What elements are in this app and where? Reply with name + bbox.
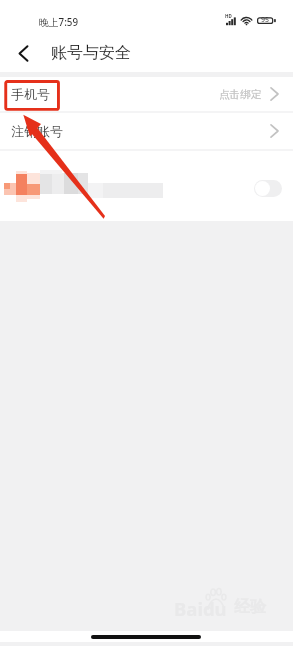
staticText: 账号与安全 xyxy=(51,43,131,63)
button[interactable]: 注销账号 xyxy=(0,113,293,149)
staticText: 注销账号 xyxy=(11,123,63,139)
button[interactable]: 手机号 xyxy=(0,77,293,111)
staticText: 手机号 xyxy=(11,86,50,102)
staticText: 点击绑定 xyxy=(219,88,262,101)
staticText: HD xyxy=(225,13,232,19)
staticText: 晚上7:59 xyxy=(39,16,79,29)
button[interactable]: 开关 xyxy=(254,180,282,197)
staticText: 95 xyxy=(261,15,270,25)
staticText: 经验 xyxy=(234,597,266,617)
button[interactable]: 返回 xyxy=(6,36,40,70)
staticText: Baidu xyxy=(174,596,227,621)
button[interactable]: 开关 xyxy=(0,151,293,221)
